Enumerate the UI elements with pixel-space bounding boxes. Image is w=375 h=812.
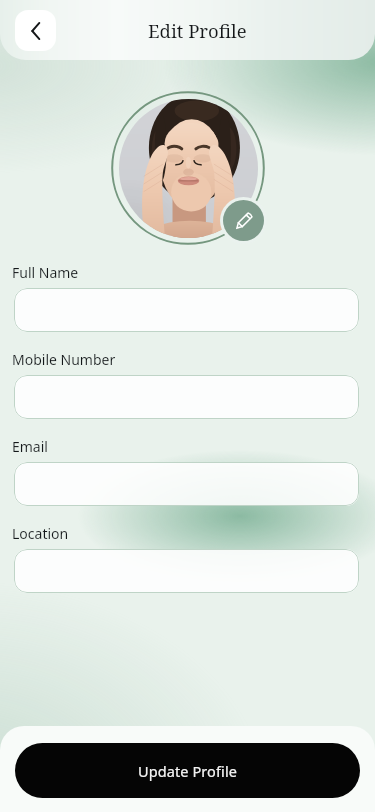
staticText: Location bbox=[12, 524, 69, 543]
button[interactable] bbox=[14, 375, 359, 419]
button[interactable]: Update Profile bbox=[15, 743, 360, 798]
button[interactable] bbox=[14, 549, 359, 593]
staticText: Email bbox=[12, 437, 48, 456]
staticText: Edit Profile bbox=[148, 18, 247, 43]
staticText: Mobile Number bbox=[12, 350, 116, 369]
staticText: Update Profile bbox=[138, 761, 238, 781]
button[interactable]: Back bbox=[15, 10, 56, 51]
button[interactable] bbox=[14, 462, 359, 506]
staticText: Full Name bbox=[12, 263, 79, 282]
button[interactable] bbox=[14, 288, 359, 332]
button[interactable]: Change profile photo bbox=[223, 200, 264, 241]
